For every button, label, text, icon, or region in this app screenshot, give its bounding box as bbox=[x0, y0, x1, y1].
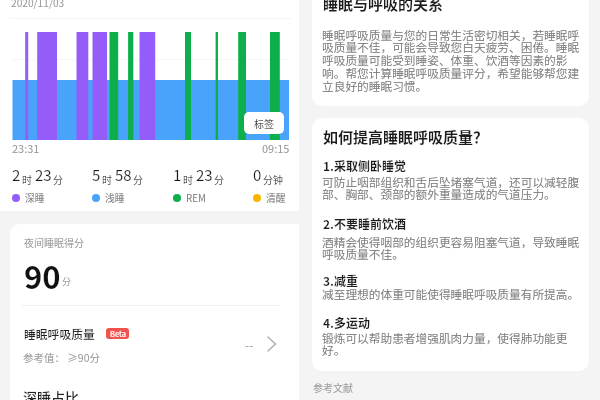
staticText: 睡眠呼吸质量与您的日常生活密切相关，若睡眠呼吸质量不佳，可能会导致您白天疲劳、困… bbox=[322, 26, 580, 95]
staticText: 0 bbox=[253, 164, 262, 186]
staticText: 09:15 bbox=[262, 140, 290, 156]
staticText: 90 bbox=[24, 253, 61, 298]
staticText: 深睡占比 bbox=[23, 387, 79, 400]
staticText: 3.减重 bbox=[323, 272, 358, 289]
button[interactable]: 参考文献 bbox=[313, 380, 353, 394]
staticText: 睡眠与呼吸的关系 bbox=[323, 0, 444, 15]
staticText: 58 bbox=[115, 164, 132, 186]
staticText: 睡眠呼吸质量 bbox=[24, 325, 95, 342]
staticText: REM bbox=[186, 191, 206, 205]
staticText: 1 bbox=[173, 164, 182, 186]
staticText: 夜间睡眠得分 bbox=[24, 235, 84, 249]
other: Open sleep breathing quality bbox=[263, 334, 279, 354]
staticText: 23 bbox=[196, 164, 213, 186]
staticText: 参考值： ≥90分 bbox=[23, 350, 101, 365]
staticText: 2020/11/03 bbox=[11, 0, 65, 10]
staticText: 分钟 bbox=[263, 172, 283, 186]
button[interactable]: 标签 bbox=[244, 112, 284, 134]
staticText: 4.多运动 bbox=[323, 314, 370, 331]
staticText: 分 bbox=[133, 172, 143, 186]
staticText: 23:31 bbox=[12, 140, 40, 156]
staticText: 2 bbox=[12, 164, 21, 186]
staticText: 时 bbox=[183, 172, 193, 186]
staticText: 时 bbox=[22, 172, 32, 186]
button[interactable]: 睡眠呼吸质量 bbox=[24, 325, 287, 342]
staticText: -- bbox=[245, 336, 254, 353]
staticText: 清醒 bbox=[266, 191, 286, 205]
staticText: 1.采取侧卧睡觉 bbox=[323, 157, 406, 174]
staticText: 分 bbox=[62, 275, 72, 288]
staticText: 标签 bbox=[254, 116, 274, 130]
staticText: 锻炼可以帮助患者增强肌肉力量，使得肺功能更好。 bbox=[322, 329, 580, 359]
staticText: 分 bbox=[214, 172, 224, 186]
staticText: 2.不要睡前饮酒 bbox=[323, 215, 406, 232]
staticText: 5 bbox=[92, 164, 101, 186]
staticText: 浅睡 bbox=[105, 191, 125, 205]
staticText: 分 bbox=[53, 172, 63, 186]
staticText: 减至理想的体重可能使得睡眠呼吸质量有所提高。 bbox=[322, 285, 580, 302]
staticText: 时 bbox=[102, 172, 112, 186]
staticText: 酒精会使得咽部的组织更容易阻塞气道，导致睡眠呼吸质量不佳。 bbox=[322, 233, 580, 263]
staticText: Beta bbox=[110, 328, 126, 339]
staticText: 23 bbox=[35, 164, 52, 186]
staticText: 可防止咽部组织和舌后坠堵塞气道，还可以减轻腹部、胸部、颈部的额外重量造成的气道压… bbox=[322, 173, 580, 203]
staticText: 深睡 bbox=[25, 191, 45, 205]
staticText: 如何提高睡眠呼吸质量？ bbox=[323, 126, 489, 148]
